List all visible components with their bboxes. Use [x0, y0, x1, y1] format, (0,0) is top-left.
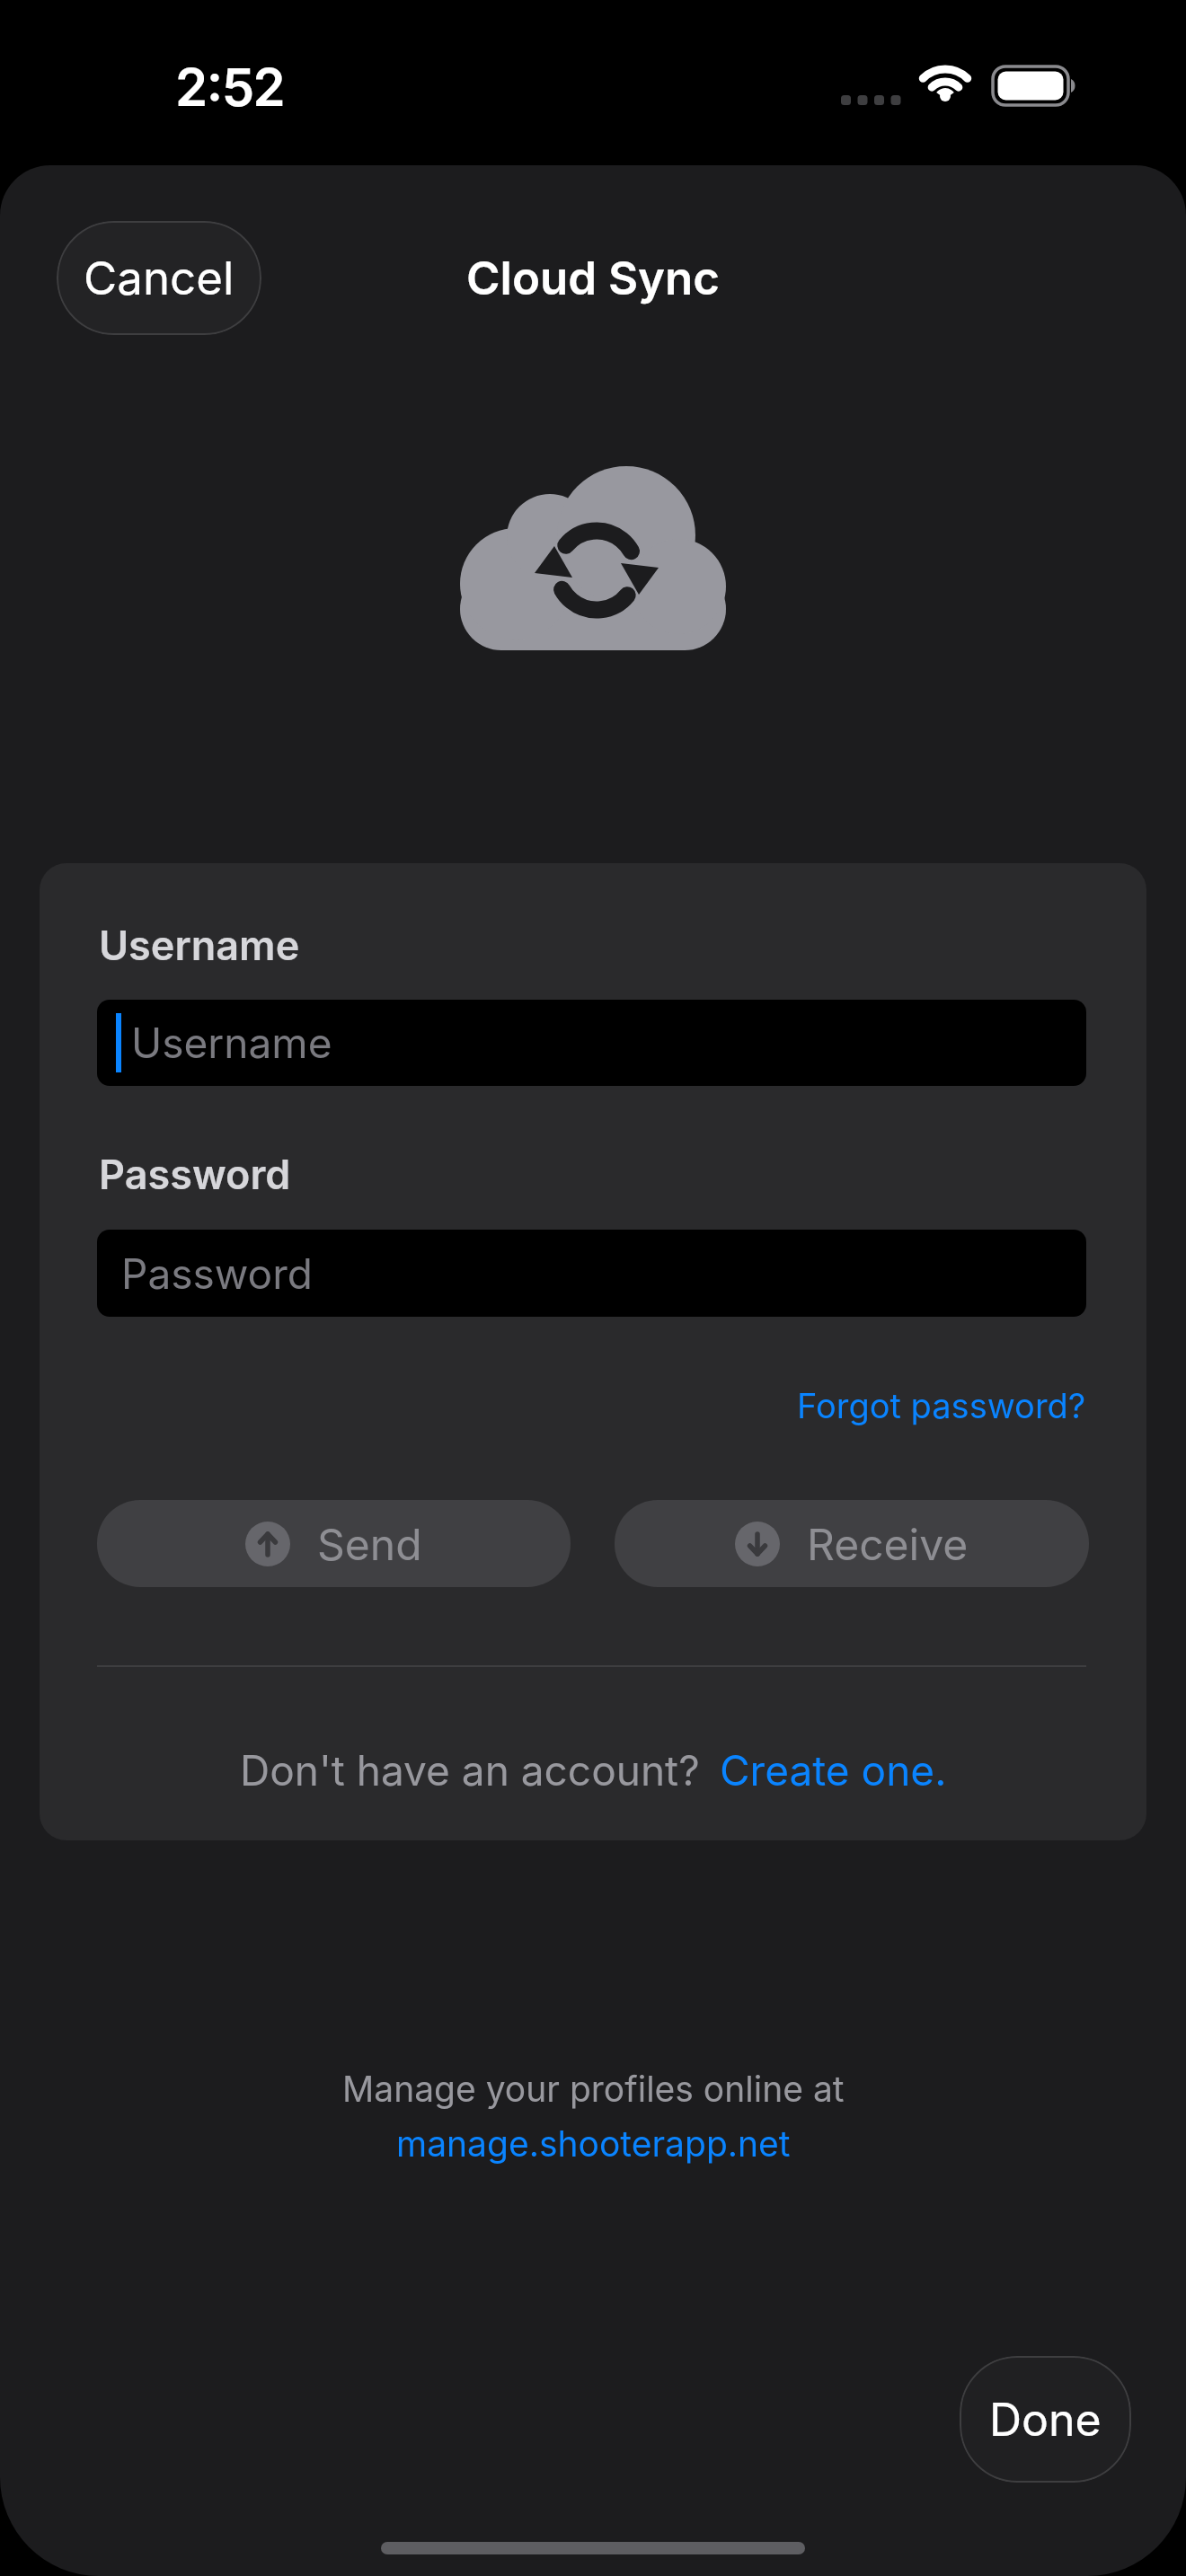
staticText: Cloud Sync: [466, 251, 720, 306]
staticText: Send: [317, 1518, 422, 1570]
button[interactable]: Create one.: [720, 1745, 947, 1795]
button[interactable]: Cancel: [57, 221, 261, 335]
staticText: Password: [99, 1150, 291, 1198]
button[interactable]: Receive: [615, 1500, 1089, 1587]
staticText: Username: [99, 921, 300, 969]
button[interactable]: Forgot password?: [797, 1385, 1086, 1426]
staticText: Receive: [807, 1518, 969, 1570]
staticText: Don't have an account?: [240, 1745, 700, 1795]
button[interactable]: Password: [97, 1230, 1086, 1317]
staticText: Cancel: [84, 251, 235, 306]
button[interactable]: manage.shooterapp.net: [396, 2122, 791, 2165]
staticText: Done: [989, 2393, 1102, 2447]
button[interactable]: Username: [97, 1000, 1086, 1086]
staticText: 2:52: [175, 56, 285, 119]
staticText: Password: [121, 1248, 313, 1299]
staticText: Manage your profiles online at: [342, 2068, 845, 2110]
button[interactable]: Send: [97, 1500, 571, 1587]
button[interactable]: Done: [960, 2356, 1131, 2483]
staticText: Username: [131, 1018, 332, 1068]
